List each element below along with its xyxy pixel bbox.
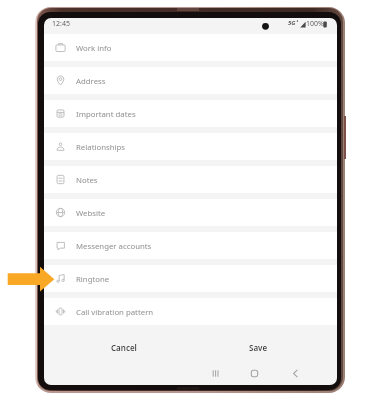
staticText: Work info bbox=[76, 43, 112, 54]
staticText: Ringtone bbox=[76, 274, 110, 285]
staticText: Address bbox=[76, 76, 106, 87]
button[interactable]: Home bbox=[244, 362, 264, 384]
staticText: Cancel bbox=[111, 342, 137, 353]
button[interactable]: Notes bbox=[44, 166, 337, 193]
staticText: Important dates bbox=[76, 109, 136, 120]
button[interactable]: Ringtone bbox=[44, 265, 337, 292]
button[interactable]: Work info bbox=[44, 34, 337, 61]
staticText: Relationships bbox=[76, 142, 126, 153]
button[interactable]: Address bbox=[44, 67, 337, 94]
button[interactable]: Important dates bbox=[44, 100, 337, 127]
staticText: 12:45 bbox=[52, 19, 70, 29]
button[interactable]: Back bbox=[285, 362, 305, 384]
button[interactable]: Cancel bbox=[91, 335, 156, 359]
staticText: Website bbox=[76, 208, 106, 219]
button[interactable]: Call vibration pattern bbox=[44, 298, 337, 325]
staticText: Notes bbox=[76, 175, 98, 186]
button[interactable]: Recent apps bbox=[205, 362, 225, 384]
button[interactable]: Relationships bbox=[44, 133, 337, 160]
staticText: Call vibration pattern bbox=[76, 307, 154, 318]
button[interactable]: Website bbox=[44, 199, 337, 226]
button[interactable]: Save bbox=[226, 335, 291, 359]
button[interactable]: Messenger accounts bbox=[44, 232, 337, 259]
staticText: 5G bbox=[288, 19, 296, 27]
staticText: 100% bbox=[306, 19, 324, 29]
staticText: Save bbox=[249, 342, 268, 353]
staticText: Messenger accounts bbox=[76, 241, 152, 252]
